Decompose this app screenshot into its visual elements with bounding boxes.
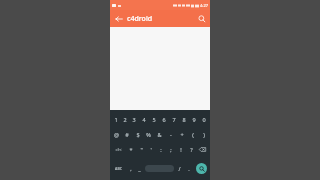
staticText: 1: [114, 116, 118, 123]
button[interactable]: -: [165, 127, 176, 142]
button[interactable]: &: [154, 127, 165, 142]
staticText: 7: [172, 116, 176, 123]
button[interactable]: /: [175, 157, 184, 179]
staticText: &: [157, 131, 162, 138]
button[interactable]: #: [121, 127, 132, 142]
staticText: 9: [192, 116, 196, 123]
button[interactable]: Search: [196, 163, 207, 174]
staticText: ": [140, 146, 143, 153]
button[interactable]: Backspace: [196, 142, 209, 157]
button[interactable]: 9: [189, 112, 199, 127]
staticText: -: [170, 131, 172, 138]
staticText: 5: [152, 116, 156, 123]
staticText: ?: [190, 146, 193, 153]
button[interactable]: $: [132, 127, 143, 142]
staticText: ABC: [115, 166, 122, 171]
staticText: +: [180, 131, 184, 138]
staticText: *: [129, 146, 133, 153]
staticText: _: [138, 165, 141, 172]
button[interactable]: Search: [193, 10, 210, 27]
staticText: ,: [130, 165, 132, 172]
button[interactable]: %: [143, 127, 154, 142]
button[interactable]: 4: [139, 112, 149, 127]
staticText: c4droid: [127, 14, 193, 24]
staticText: 4: [142, 116, 146, 123]
button[interactable]: @: [111, 127, 121, 142]
button[interactable]: 7: [169, 112, 179, 127]
button[interactable]: ABC: [111, 157, 126, 179]
staticText: .: [188, 165, 190, 172]
staticText: =\<: [115, 147, 122, 152]
staticText: /: [178, 165, 181, 172]
button[interactable]: ,: [126, 157, 135, 179]
staticText: 3: [132, 116, 136, 123]
button[interactable]: 5: [149, 112, 159, 127]
staticText: 8: [182, 116, 186, 123]
staticText: 2: [123, 116, 127, 123]
button[interactable]: (: [187, 127, 198, 142]
button[interactable]: +: [176, 127, 187, 142]
staticText: %: [146, 131, 151, 138]
staticText: ': [150, 146, 152, 153]
staticText: (: [192, 131, 194, 138]
button[interactable]: =\<: [111, 142, 125, 157]
button[interactable]: ;: [166, 142, 176, 157]
staticText: ): [203, 131, 205, 138]
staticText: !: [180, 146, 182, 153]
staticText: $: [136, 131, 140, 138]
button[interactable]: 6: [159, 112, 169, 127]
button[interactable]: 1: [111, 112, 120, 127]
button[interactable]: 3: [129, 112, 139, 127]
button[interactable]: ): [198, 127, 209, 142]
button[interactable]: .: [184, 157, 193, 179]
button[interactable]: !: [176, 142, 186, 157]
staticText: ;: [170, 146, 172, 153]
button[interactable]: :: [156, 142, 166, 157]
staticText: 6: [162, 116, 166, 123]
button[interactable]: 8: [179, 112, 189, 127]
button[interactable]: ?: [186, 142, 196, 157]
button[interactable]: ": [136, 142, 146, 157]
staticText: #: [125, 131, 129, 138]
button[interactable]: Space: [145, 165, 174, 172]
button[interactable]: 2: [120, 112, 129, 127]
button[interactable]: _: [135, 157, 144, 179]
staticText: :: [160, 146, 162, 153]
button[interactable]: ': [146, 142, 156, 157]
staticText: @: [114, 131, 119, 138]
staticText: 4:27: [200, 3, 208, 8]
button[interactable]: 0: [199, 112, 209, 127]
button[interactable]: Back: [110, 10, 127, 27]
button[interactable]: *: [125, 142, 136, 157]
staticText: 0: [202, 116, 206, 123]
